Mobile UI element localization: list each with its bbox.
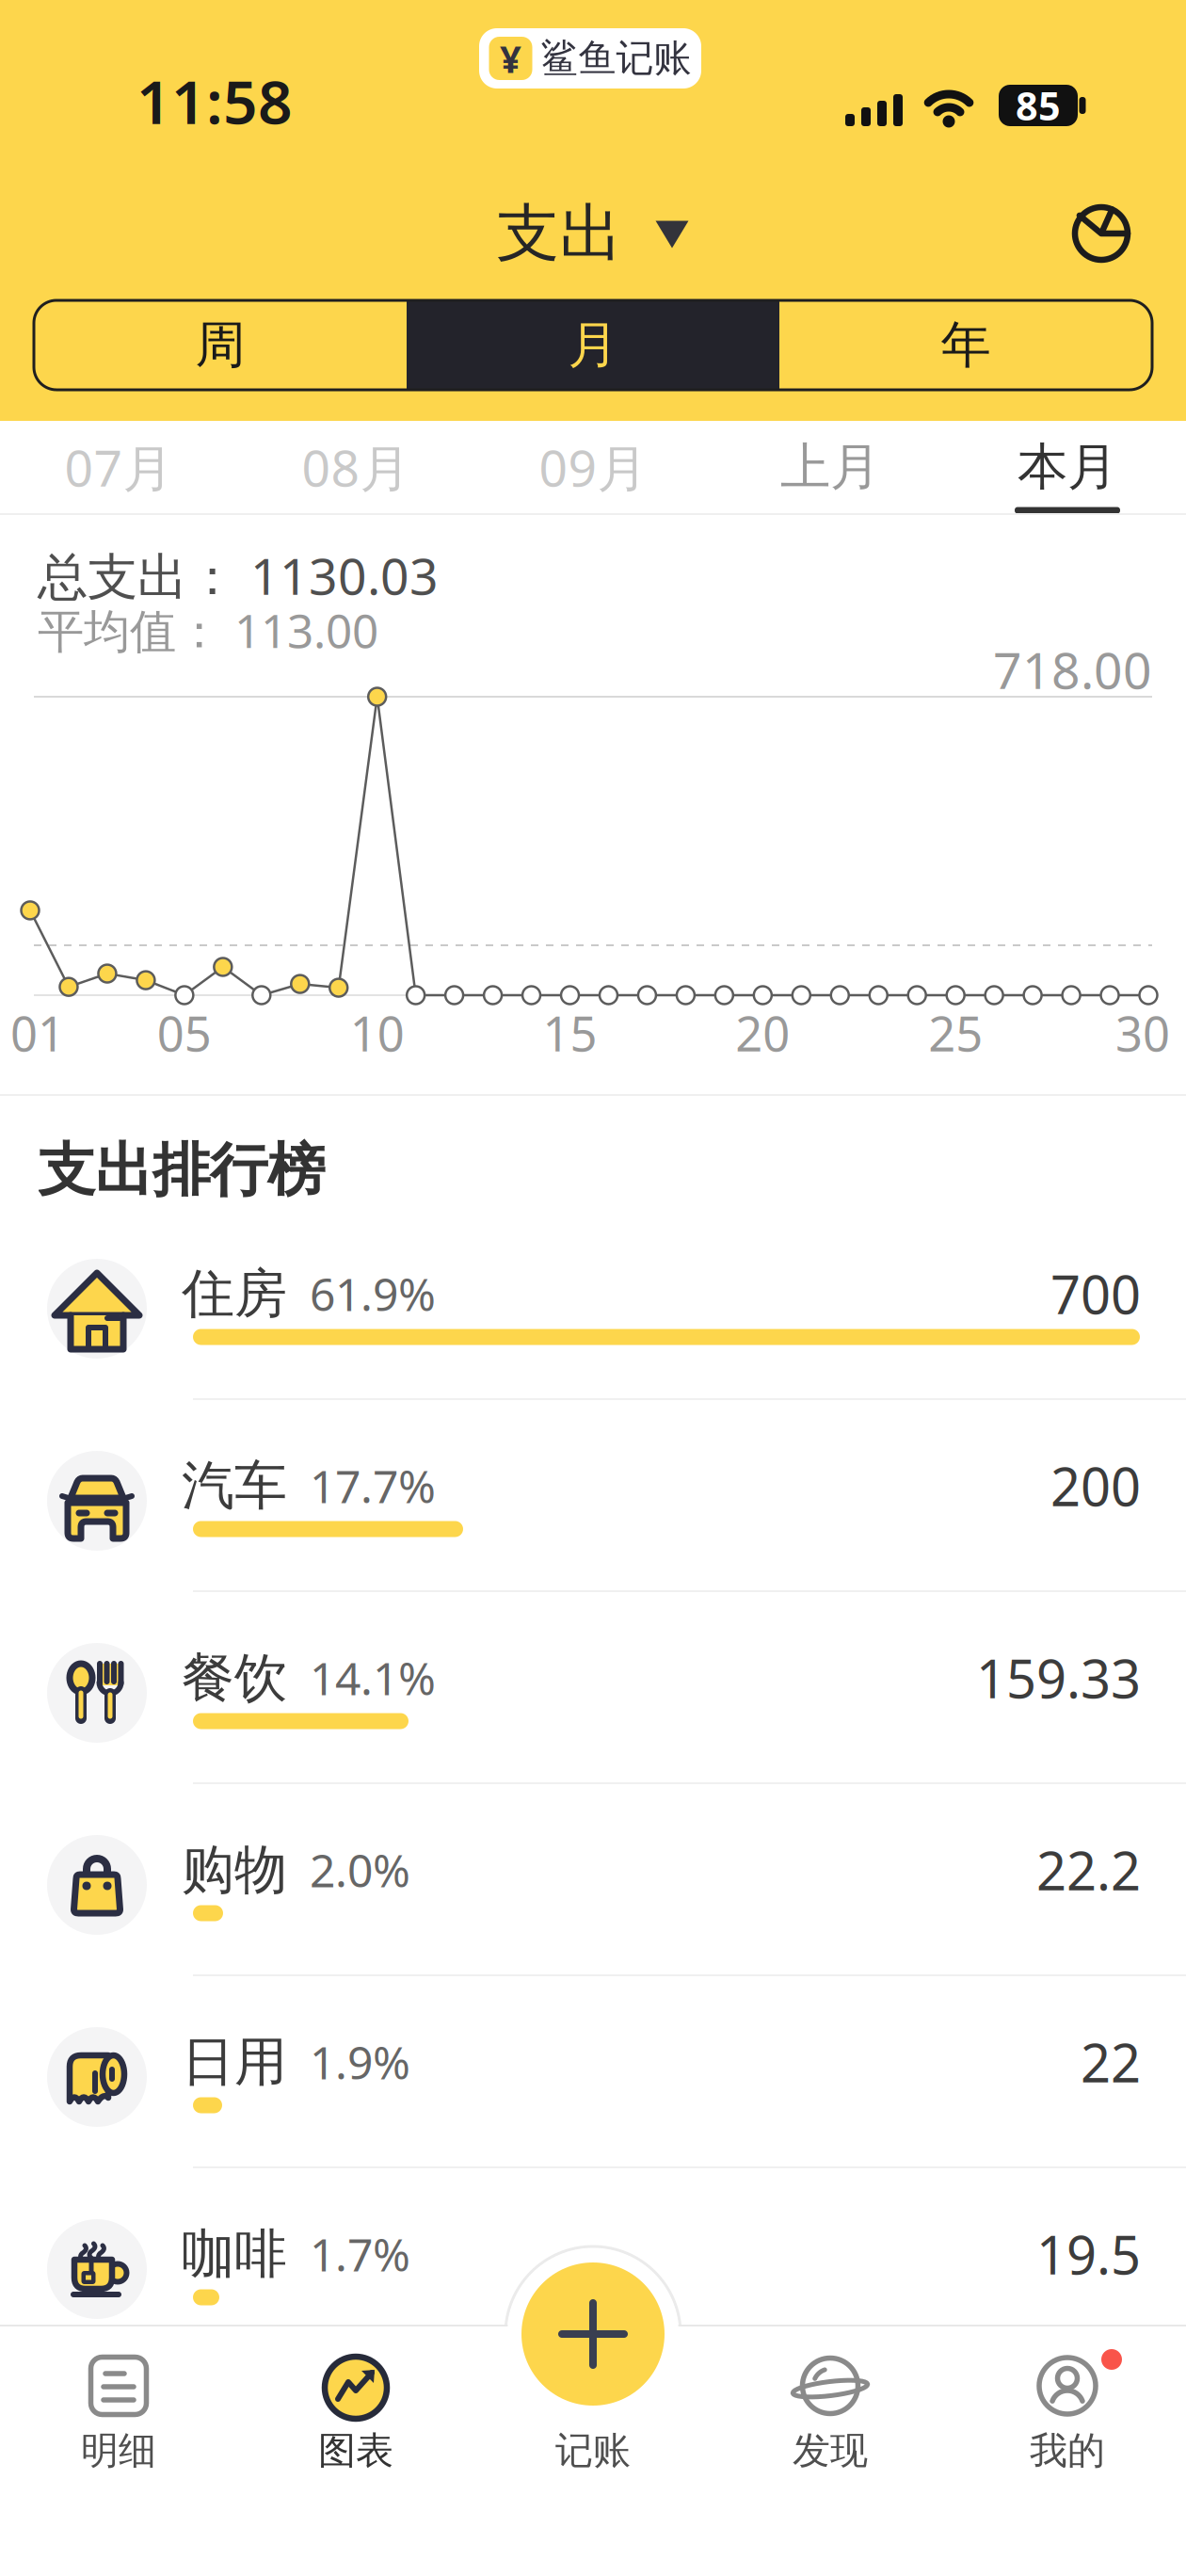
staticText: 08月 [302, 434, 410, 500]
staticText: 20 [735, 1001, 790, 1065]
staticText: 月 [568, 314, 618, 376]
staticText: 我的 [1030, 2428, 1105, 2474]
staticText: 记账 [555, 2428, 631, 2474]
staticText: 200 [1050, 1451, 1141, 1521]
staticText: 05 [157, 1001, 212, 1065]
button[interactable]: 咖啡 [0, 2175, 1186, 2363]
staticText: 1.9% [310, 2032, 410, 2092]
staticText: 鲨鱼记账 [541, 35, 691, 81]
staticText: 09月 [539, 434, 647, 500]
button[interactable]: 月 [414, 303, 772, 387]
button[interactable]: 本月 [954, 422, 1180, 512]
staticText: 61.9% [310, 1264, 436, 1324]
staticText: 19.5 [1036, 2219, 1141, 2289]
button[interactable]: 明细 [0, 0, 1186, 2576]
button[interactable]: 周 [41, 303, 399, 387]
staticText: 2.0% [310, 1840, 410, 1900]
button[interactable]: 日用 [0, 1983, 1186, 2171]
staticText: 年 [941, 314, 991, 376]
staticText: 700 [1050, 1259, 1141, 1329]
staticText: 25 [928, 1001, 983, 1065]
button[interactable]: 饼图 [1072, 204, 1130, 263]
button[interactable]: 住房 [0, 1215, 1186, 1403]
staticText: 咖啡 [182, 2222, 287, 2286]
staticText: 22 [1081, 2027, 1141, 2097]
staticText: 平均值： 113.00 [38, 599, 378, 661]
staticText: 明细 [81, 2428, 156, 2474]
button[interactable]: 餐饮 [0, 1599, 1186, 1787]
button[interactable]: 08月 [243, 422, 469, 512]
button[interactable]: 我的 [0, 0, 1186, 2576]
staticText: 餐饮 [182, 1645, 287, 1710]
staticText: 85 [1016, 80, 1061, 131]
staticText: 上月 [780, 436, 880, 498]
button[interactable]: 09月 [480, 422, 706, 512]
staticText: 图表 [318, 2428, 393, 2474]
button[interactable]: 购物 [0, 1791, 1186, 1979]
staticText: 11:58 [136, 61, 293, 141]
staticText: 07月 [64, 434, 173, 500]
button[interactable]: 上月 [717, 422, 943, 512]
button[interactable]: 年 [787, 303, 1145, 387]
staticText: 汽车 [182, 1453, 287, 1518]
button[interactable]: 图表 [0, 0, 1186, 2576]
staticText: 10 [350, 1001, 404, 1065]
staticText: 总支出： 1130.03 [38, 542, 439, 609]
staticText: 支出 [497, 195, 623, 272]
staticText: 住房 [182, 1261, 287, 1326]
staticText: 周 [195, 314, 245, 376]
staticText: 发现 [793, 2428, 868, 2474]
staticText: 购物 [182, 1837, 287, 1902]
staticText: 1.7% [310, 2224, 410, 2284]
staticText: 日用 [182, 2030, 287, 2094]
staticText: 01 [10, 1001, 65, 1065]
staticText: ¥ [500, 33, 521, 83]
button[interactable]: 支出 [497, 195, 689, 272]
staticText: 22.2 [1036, 1835, 1141, 1905]
staticText: 718.00 [993, 636, 1152, 703]
button[interactable]: 07月 [6, 422, 232, 512]
staticText: 支出排行榜 [38, 1135, 325, 1206]
button[interactable]: 汽车 [0, 1407, 1186, 1595]
staticText: 14.1% [310, 1648, 436, 1708]
staticText: 30 [1115, 1001, 1170, 1065]
staticText: 159.33 [976, 1643, 1141, 1713]
staticText: 17.7% [310, 1456, 436, 1516]
button[interactable]: 记账 [0, 0, 1186, 2576]
staticText: 本月 [1018, 436, 1117, 498]
button[interactable]: 发现 [0, 0, 1186, 2576]
staticText: 15 [543, 1001, 597, 1065]
